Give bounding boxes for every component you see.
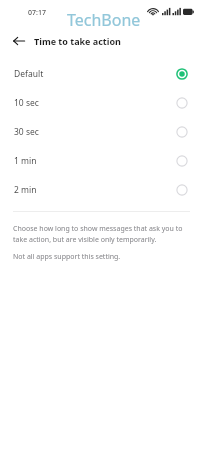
staticText: Default [14, 68, 176, 80]
staticText: 10 sec [14, 97, 176, 109]
staticText: 1 min [14, 155, 176, 167]
button[interactable]: Default [0, 59, 202, 88]
staticText: 2 min [14, 184, 176, 196]
staticText: Choose how long to show messages that as… [13, 224, 191, 244]
button[interactable]: 2 min [0, 175, 202, 204]
staticText: TechBone [67, 9, 141, 31]
staticText: Time to take action [34, 35, 121, 47]
button[interactable]: 1 min [0, 146, 202, 175]
staticText: Not all apps support this setting. [13, 252, 121, 262]
button[interactable]: Back [8, 30, 30, 52]
button[interactable]: 10 sec [0, 88, 202, 117]
staticText: 30 sec [14, 126, 176, 138]
button[interactable]: 30 sec [0, 117, 202, 146]
staticText: 07:17 [28, 8, 46, 18]
